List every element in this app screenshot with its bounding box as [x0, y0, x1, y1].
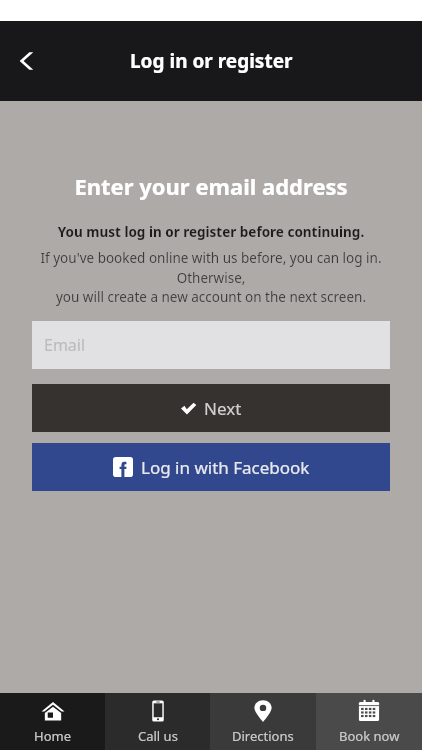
button[interactable]: Directions: [210, 693, 316, 750]
button[interactable]: Home: [0, 693, 105, 750]
staticText: Home: [34, 727, 71, 745]
button[interactable]: Book now: [316, 693, 422, 750]
staticText: Log in with Facebook: [141, 456, 310, 479]
staticText: Enter your email address: [0, 171, 422, 201]
staticText: Next: [204, 397, 242, 420]
staticText: Log in or register: [130, 48, 293, 74]
staticText: Directions: [232, 727, 294, 745]
button[interactable]: Email: [32, 321, 390, 369]
button[interactable]: Back: [6, 39, 50, 83]
staticText: You must log in or register before conti…: [0, 223, 422, 241]
button[interactable]: Call us: [105, 693, 210, 750]
staticText: Email: [44, 334, 86, 356]
button[interactable]: Next: [32, 384, 390, 432]
button[interactable]: Log in with Facebook: [32, 443, 390, 491]
staticText: Call us: [138, 727, 178, 745]
staticText: Book now: [339, 727, 400, 745]
staticText: If you've booked online with us before, …: [12, 249, 410, 306]
